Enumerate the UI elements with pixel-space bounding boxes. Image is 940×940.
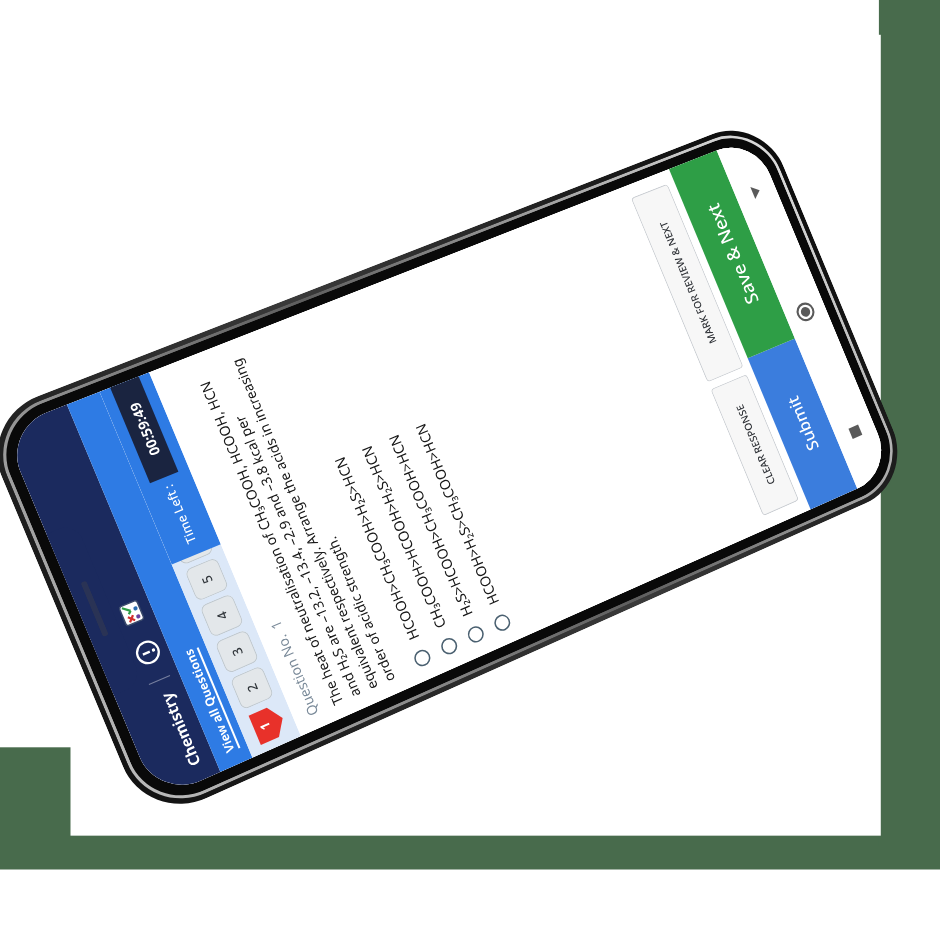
button[interactable]: CLEAR RESPONSE — [710, 374, 799, 516]
staticText: Time Left : — [160, 481, 200, 546]
staticText: 6 — [182, 536, 202, 550]
staticText: CLEAR RESPONSE — [732, 402, 778, 487]
staticText: The heat of neutralisation of CH₃COOH, H… — [189, 344, 399, 708]
button[interactable]: H₂S>HCOOH>CH₃COOH>HCN — [332, 308, 487, 646]
button[interactable]: Submit — [748, 338, 857, 509]
button[interactable]: 2 — [229, 665, 274, 710]
button[interactable]: HCOOH>H₂S>CH₃COOH>HCN — [359, 298, 514, 634]
staticText: H₂S>HCOOH>CH₃COOH>HCN — [383, 432, 477, 620]
staticText: 2 — [242, 680, 262, 695]
button[interactable]: Save & Next — [669, 150, 795, 358]
staticText: View all Questions — [180, 647, 238, 756]
button[interactable]: CH₃COOH>HCOOH>H₂S>HCN — [305, 319, 461, 658]
staticText: 4 — [212, 608, 232, 623]
button[interactable]: 5 — [184, 557, 229, 602]
staticText: 7 — [166, 500, 187, 514]
staticText: 1 — [255, 719, 275, 733]
button[interactable]: MARK FOR REVIEW & NEXT — [631, 184, 744, 382]
button[interactable]: 6 — [169, 521, 214, 566]
button[interactable]: 3 — [214, 629, 259, 674]
staticText: 5 — [197, 572, 217, 587]
button[interactable]: Recents — [836, 411, 875, 452]
button[interactable]: Instructions — [128, 632, 168, 673]
staticText: Submit — [782, 392, 824, 454]
button[interactable]: HCOOH>CH₃COOH>H₂S>HCN — [277, 330, 434, 670]
staticText: Chemistry — [156, 689, 205, 770]
button[interactable]: Legend — [111, 593, 152, 633]
staticText: 3 — [227, 644, 247, 659]
button[interactable]: 4 — [199, 593, 244, 638]
button[interactable]: Home — [786, 292, 825, 332]
staticText: Question No. 1 — [266, 618, 322, 719]
button[interactable]: 1 — [244, 701, 291, 749]
staticText: CH₃COOH>HCOOH>H₂S>HCN — [356, 443, 450, 632]
staticText: HCOOH>H₂S>CH₃COOH>HCN — [410, 421, 503, 608]
button[interactable]: View all Questions — [180, 645, 240, 756]
button[interactable]: 7 — [154, 485, 199, 529]
staticText: MARK FOR REVIEW & NEXT — [656, 219, 719, 346]
staticText: HCOOH>CH₃COOH>H₂S>HCN — [329, 454, 423, 643]
staticText: Save & Next — [701, 200, 764, 308]
staticText: 00:59:49 — [125, 399, 164, 459]
button[interactable]: Back — [736, 172, 775, 212]
